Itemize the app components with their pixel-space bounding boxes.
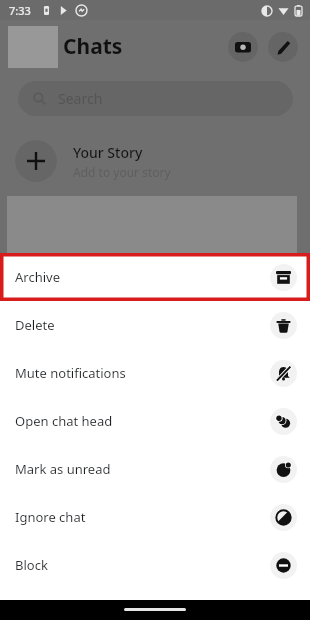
staticText: 7:33 <box>9 3 31 18</box>
button[interactable]: Archive <box>0 253 310 301</box>
staticText: Open chat head <box>15 412 270 430</box>
button[interactable]: Your Story <box>0 131 310 191</box>
button[interactable]: Mark as unread <box>0 445 310 493</box>
button[interactable]: New message <box>268 32 298 62</box>
staticText: Delete <box>15 316 270 334</box>
staticText: Mark as unread <box>15 460 270 478</box>
staticText: Mute notifications <box>15 364 270 382</box>
staticText: Chats <box>63 32 123 61</box>
staticText: Your Story <box>73 143 143 162</box>
button[interactable]: Delete <box>0 301 310 349</box>
button[interactable]: Open chat head <box>0 397 310 445</box>
staticText: Ignore chat <box>15 508 270 526</box>
button[interactable]: Ignore chat <box>0 493 310 541</box>
staticText: Add to your story <box>73 164 171 180</box>
staticText: Archive <box>15 268 270 286</box>
staticText: Block <box>15 556 270 574</box>
button[interactable]: Mute notifications <box>0 349 310 397</box>
button[interactable]: Block <box>0 541 310 589</box>
staticText: Search <box>58 89 103 108</box>
button[interactable]: Camera <box>228 32 258 62</box>
